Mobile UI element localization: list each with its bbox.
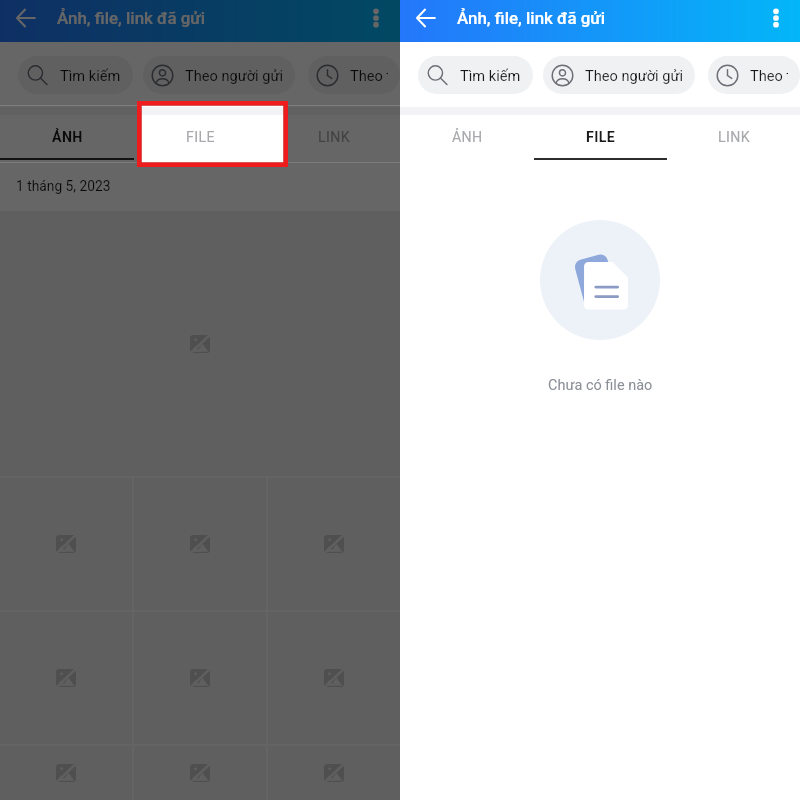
button[interactable]: FILE xyxy=(534,115,667,160)
button[interactable]: Tìm kiếm xyxy=(418,56,533,94)
button[interactable]: Theo người gửi xyxy=(543,56,695,94)
staticText: ẢNH xyxy=(52,129,83,146)
staticText: Theo người gửi xyxy=(185,67,283,84)
button[interactable]: ẢNH xyxy=(0,115,134,160)
staticText: LINK xyxy=(318,129,350,146)
staticText: ẢNH xyxy=(452,129,483,146)
staticText: Tìm kiếm xyxy=(60,67,121,84)
staticText: 1 tháng 5, 2023 xyxy=(16,178,111,194)
button[interactable]: LINK xyxy=(667,115,800,160)
staticText: Theo người gửi xyxy=(585,67,683,84)
button[interactable]: LINK xyxy=(267,115,400,160)
button[interactable]: Back xyxy=(0,0,48,39)
staticText: Ảnh, file, link đã gửi xyxy=(57,8,205,28)
button[interactable]: Tìm kiếm xyxy=(18,56,133,94)
staticText: FILE xyxy=(186,129,215,146)
staticText: Chưa có file nào xyxy=(548,377,653,394)
button[interactable]: Theo thời gian xyxy=(708,56,800,94)
button[interactable]: Theo người gửi xyxy=(143,56,295,94)
staticText: FILE xyxy=(586,129,615,146)
button[interactable]: Back xyxy=(400,0,448,39)
staticText: Theo thời gian xyxy=(350,67,388,84)
button[interactable]: FILE xyxy=(134,115,267,160)
button[interactable]: Theo thời gian xyxy=(308,56,400,94)
staticText: Theo thời gian xyxy=(750,67,788,84)
staticText: Tìm kiếm xyxy=(460,67,521,84)
staticText: Ảnh, file, link đã gửi xyxy=(457,8,605,28)
staticText: LINK xyxy=(718,129,750,146)
button[interactable]: More options xyxy=(752,0,800,39)
button[interactable]: More options xyxy=(352,0,400,39)
button[interactable]: ẢNH xyxy=(400,115,534,160)
